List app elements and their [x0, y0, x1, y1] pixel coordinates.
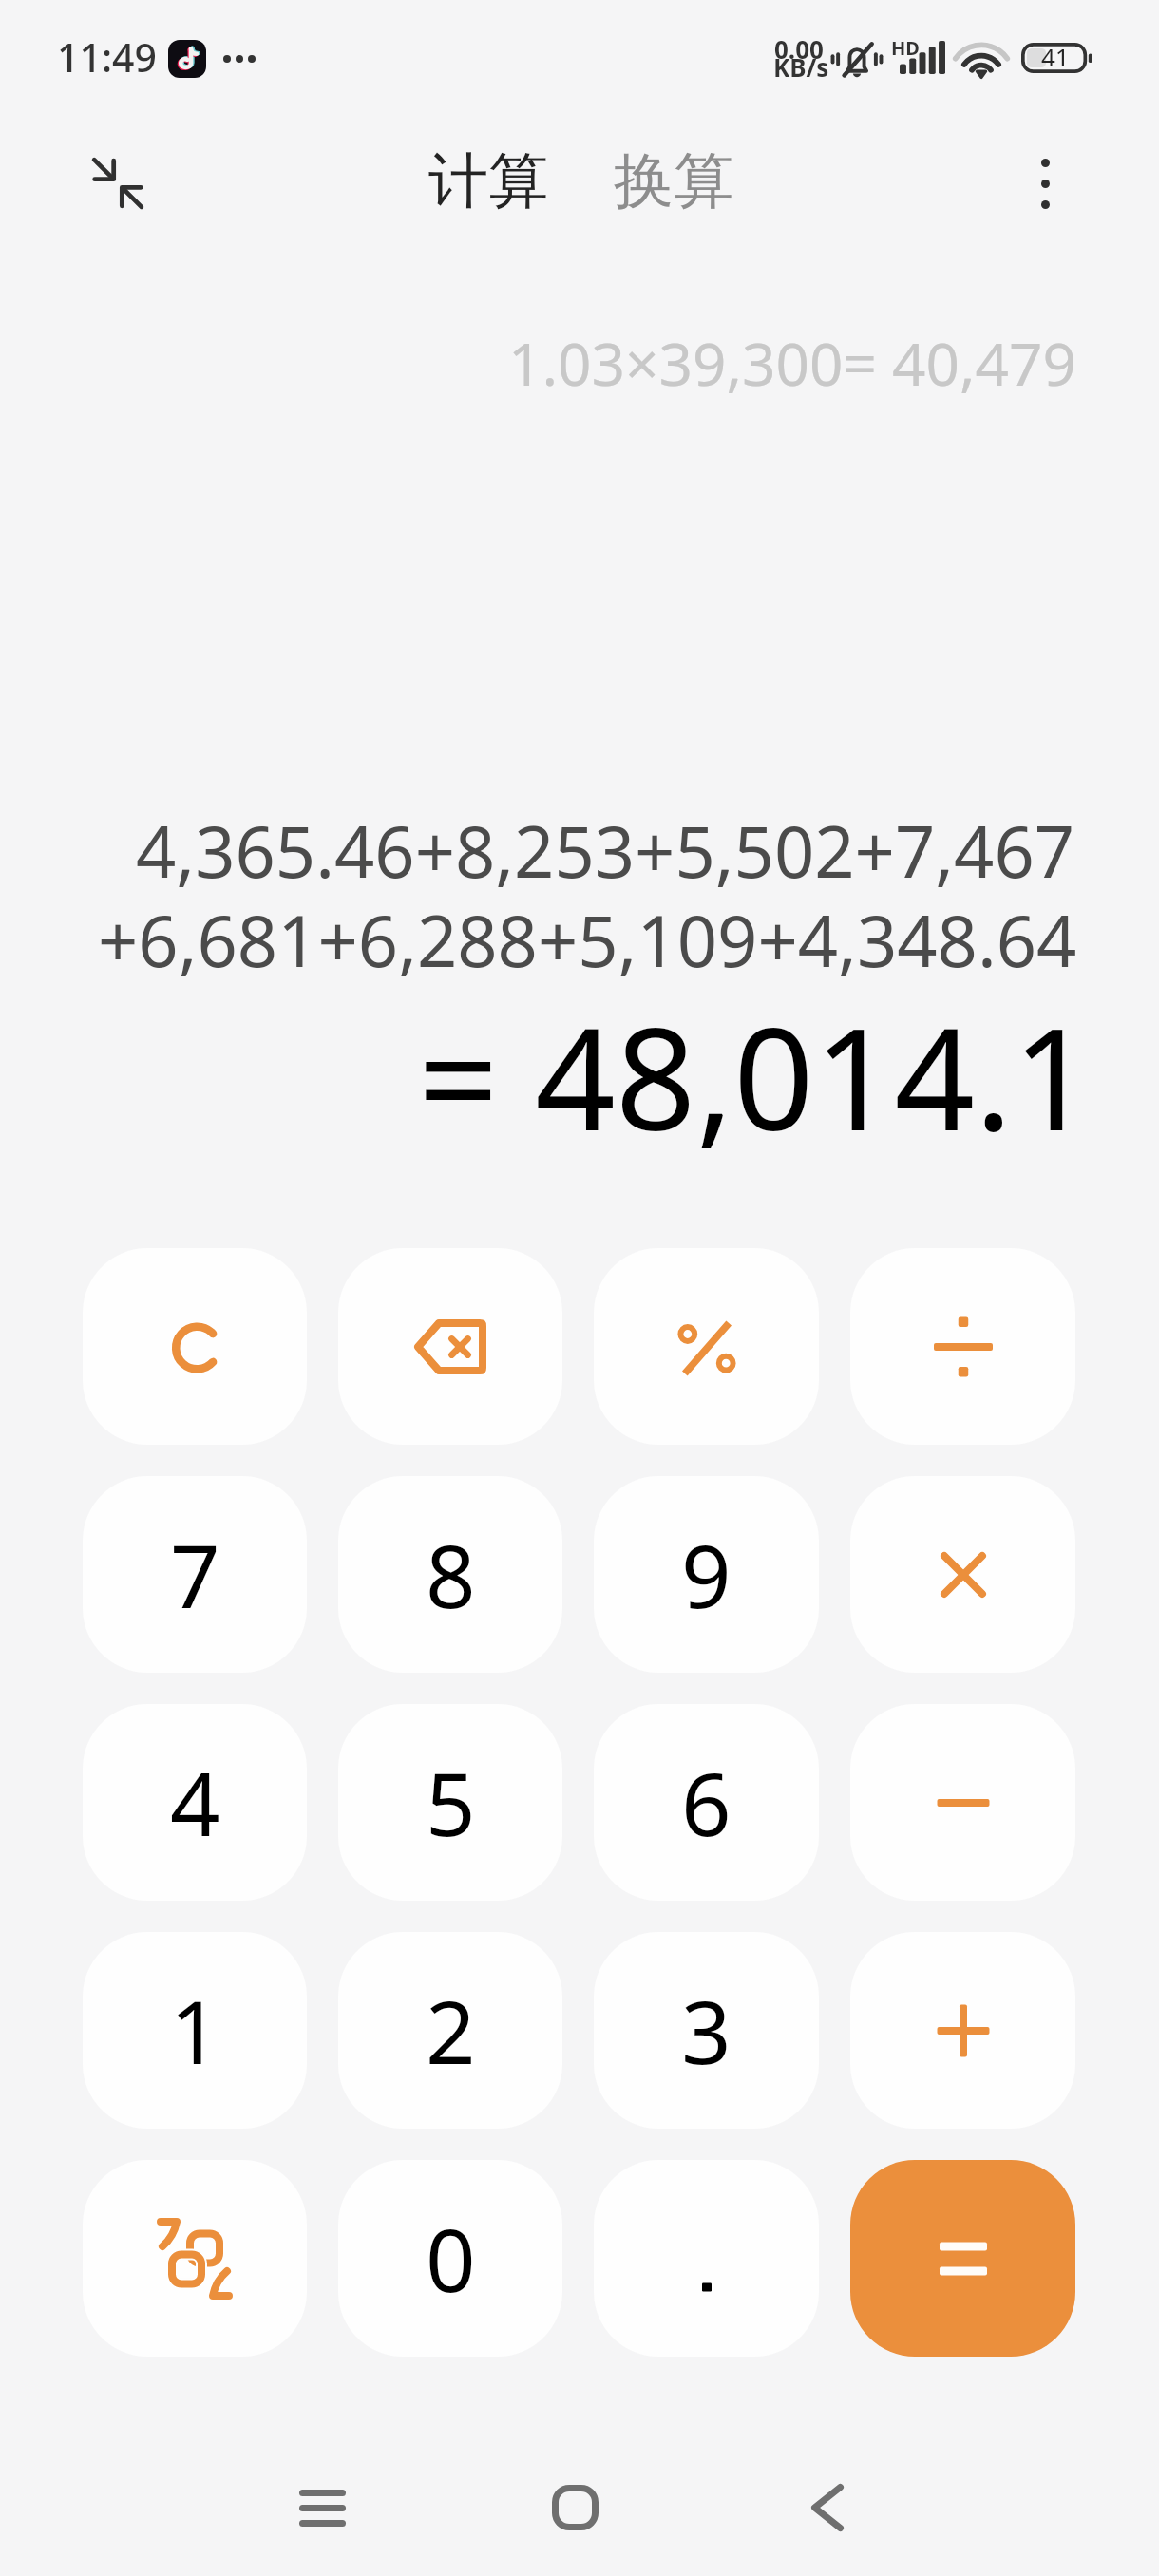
button[interactable]: Plus	[850, 1932, 1075, 2129]
staticText: 1	[170, 1971, 220, 2090]
staticText: 计算	[428, 143, 548, 218]
button[interactable]: 6	[594, 1704, 819, 1901]
button[interactable]: 8	[338, 1476, 562, 1673]
button[interactable]: Divide	[850, 1248, 1075, 1445]
button[interactable]: Decimal point	[594, 2160, 819, 2357]
button[interactable]: Equals	[850, 2160, 1075, 2357]
staticText: 9	[681, 1515, 731, 1634]
staticText: 5	[426, 1743, 476, 1862]
button[interactable]: Back	[761, 2451, 894, 2565]
staticText: 0.00	[774, 32, 824, 66]
staticText: HD	[891, 35, 920, 61]
staticText: 7	[170, 1515, 220, 1634]
button[interactable]: Home	[508, 2451, 641, 2565]
staticText: 4,365.46+8,253+5,502+7,467	[136, 803, 1075, 899]
button[interactable]: Exit full screen	[61, 126, 175, 240]
button[interactable]: 7	[83, 1476, 307, 1673]
button[interactable]: Recent apps	[256, 2451, 389, 2565]
button[interactable]: 4	[83, 1704, 307, 1901]
staticText: 0	[426, 2199, 476, 2318]
staticText: +6,681+6,288+5,109+4,348.64	[98, 892, 1077, 988]
staticText: 3	[681, 1971, 731, 2090]
button[interactable]: Multiply	[850, 1476, 1075, 1673]
button[interactable]: 3	[594, 1932, 819, 2129]
button[interactable]: Percent	[594, 1248, 819, 1445]
staticText: = 48,014.1	[418, 980, 1093, 1172]
button[interactable]: 5	[338, 1704, 562, 1901]
button[interactable]: 换算	[595, 124, 752, 237]
button[interactable]: Backspace	[338, 1248, 562, 1445]
button[interactable]: 计算	[409, 124, 567, 237]
staticText: 41	[1041, 40, 1070, 73]
button[interactable]: Clear	[83, 1248, 307, 1445]
staticText: 11:49	[57, 30, 157, 84]
staticText: KB/s	[773, 50, 829, 84]
button[interactable]: 9	[594, 1476, 819, 1673]
button[interactable]: 1	[83, 1932, 307, 2129]
staticText: 1.03×39,300= 40,479	[508, 323, 1076, 403]
button[interactable]: Unit converter	[83, 2160, 307, 2357]
button[interactable]: More options	[993, 131, 1097, 236]
staticText: 6	[681, 1743, 731, 1862]
button[interactable]: 2	[338, 1932, 562, 2129]
button[interactable]: 0	[338, 2160, 562, 2357]
staticText: 2	[426, 1971, 476, 2090]
staticText: 换算	[614, 143, 733, 218]
button[interactable]: Minus	[850, 1704, 1075, 1901]
staticText: 4	[170, 1743, 220, 1862]
staticText: 8	[426, 1515, 476, 1634]
